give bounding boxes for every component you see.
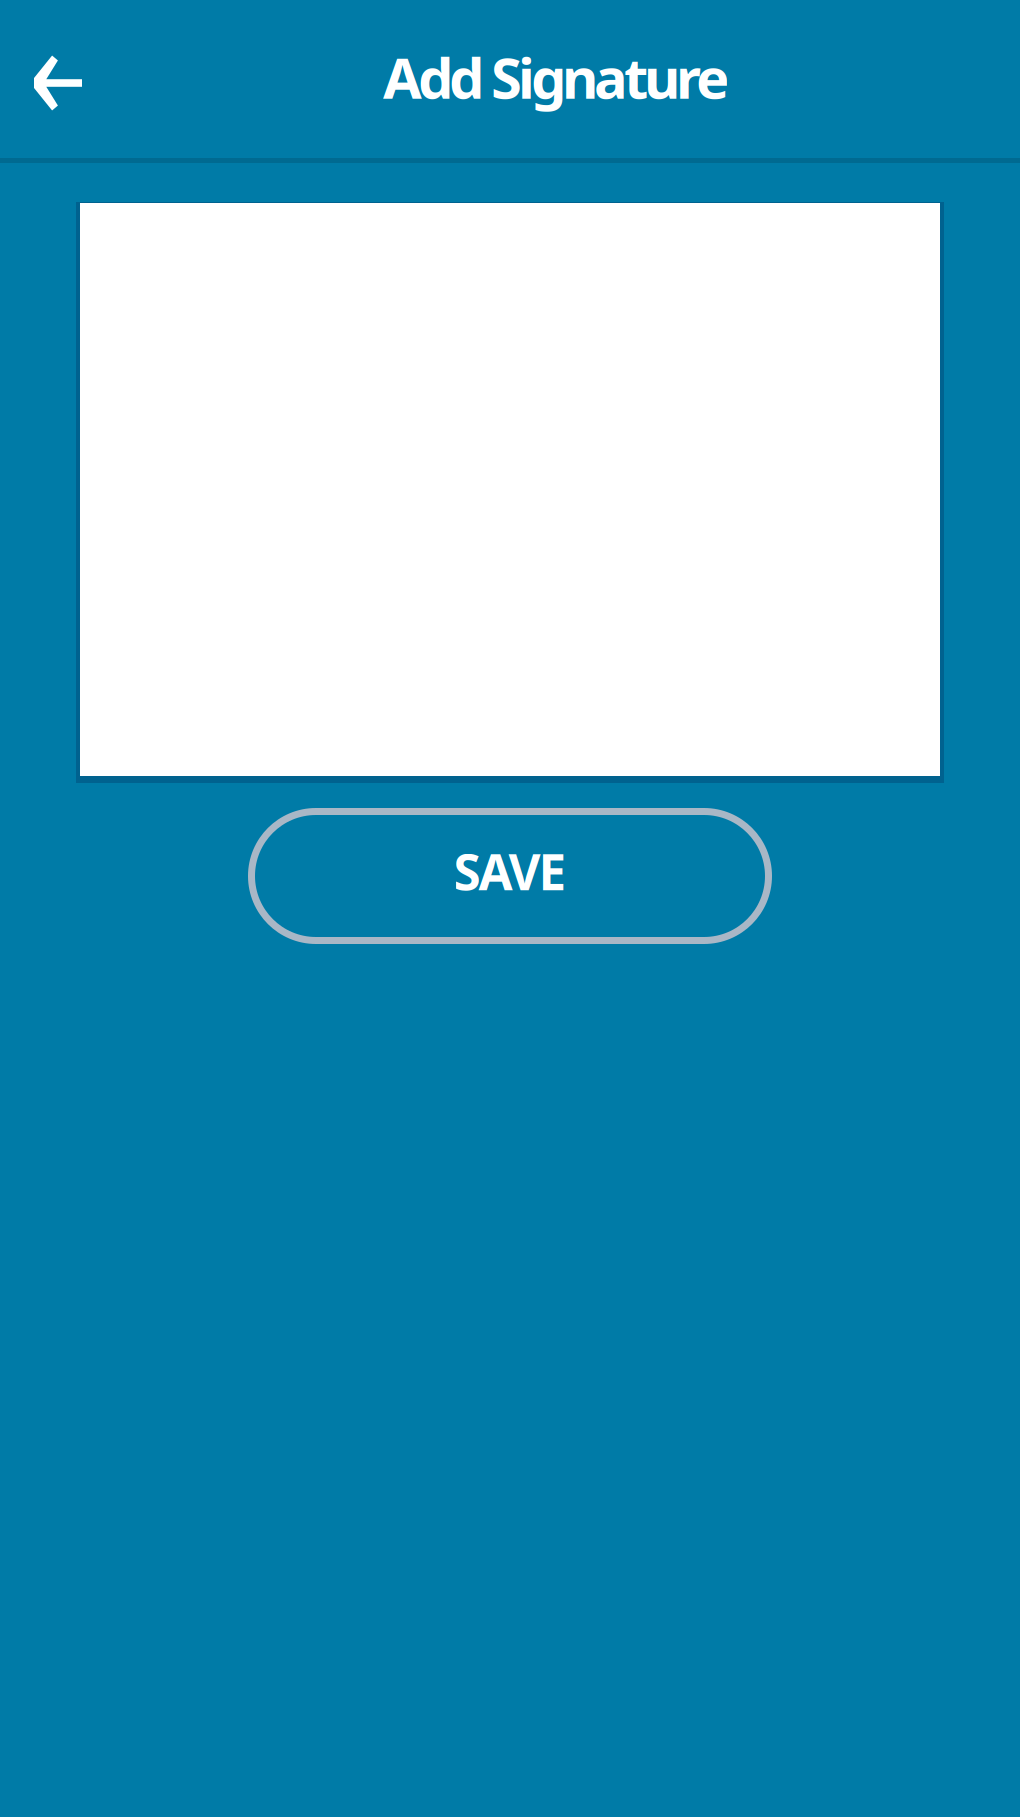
button[interactable]: Back: [0, 0, 114, 158]
staticText: SAVE: [453, 838, 566, 904]
button[interactable]: SAVE: [248, 808, 772, 944]
staticText: Add Signature: [383, 40, 729, 114]
